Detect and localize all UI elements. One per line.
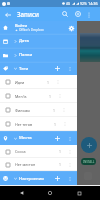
staticText: 4G xyxy=(66,2,71,6)
staticText: Места xyxy=(19,135,32,141)
staticText: Cocoa Island, The Ma xyxy=(15,149,37,154)
button[interactable]: INSTALL xyxy=(81,158,96,165)
button[interactable]: Search xyxy=(59,8,71,20)
button[interactable]: Home xyxy=(43,186,57,200)
button[interactable]: Места xyxy=(0,131,77,145)
button[interactable]: Back xyxy=(15,186,29,200)
staticText: Нет местоположения xyxy=(15,162,37,167)
button[interactable]: Add entry xyxy=(81,137,97,153)
staticText: Войти xyxy=(15,23,28,28)
staticText: 1 xyxy=(54,122,56,127)
staticText: 1 xyxy=(47,80,49,85)
button[interactable]: Дата xyxy=(0,34,77,48)
staticText: Настроения xyxy=(19,176,44,182)
staticText: 1 xyxy=(59,149,61,154)
button[interactable]: Recent apps xyxy=(72,186,86,200)
button[interactable]: Войти xyxy=(0,21,77,34)
staticText: Записи xyxy=(17,10,39,18)
button[interactable]: Section options xyxy=(64,173,75,184)
staticText: 1 xyxy=(59,162,61,167)
button[interactable]: Section options xyxy=(64,63,75,74)
button[interactable]: Men'ts xyxy=(0,89,77,103)
button[interactable]: Фильмы xyxy=(0,103,77,117)
staticText: Теги xyxy=(19,66,29,72)
staticText: Office's Dropbox xyxy=(19,28,44,32)
button[interactable]: Cocoa Island, The Ma xyxy=(0,145,77,158)
staticText: Нет тегов xyxy=(15,122,32,127)
staticText: 1 xyxy=(53,108,55,113)
button[interactable]: Папки xyxy=(0,48,77,62)
staticText: Папки xyxy=(19,52,33,58)
button[interactable]: Add xyxy=(52,133,63,144)
staticText: 92% xyxy=(80,1,87,6)
button[interactable]: Идеи xyxy=(0,75,77,89)
button[interactable]: Section options xyxy=(64,133,75,144)
staticText: Men'ts xyxy=(15,94,27,99)
staticText: Дата xyxy=(19,38,29,44)
button[interactable]: More options xyxy=(83,9,94,20)
staticText: 14:36 xyxy=(88,1,98,6)
staticText: INSTALL xyxy=(83,160,95,164)
button[interactable]: Filter xyxy=(72,8,84,20)
button[interactable]: Настроения xyxy=(0,171,77,186)
button[interactable]: Нет тегов xyxy=(0,117,77,131)
button[interactable]: Add xyxy=(52,63,63,74)
button[interactable]: Add xyxy=(52,173,63,184)
button[interactable]: Теги xyxy=(0,62,77,75)
staticText: Фильмы xyxy=(15,108,31,113)
button[interactable]: Settings xyxy=(65,22,77,34)
staticText: Идеи xyxy=(15,80,25,85)
staticText: 1 xyxy=(49,94,51,99)
button[interactable]: Back xyxy=(1,8,14,21)
button[interactable]: Нет местоположения xyxy=(0,158,77,171)
